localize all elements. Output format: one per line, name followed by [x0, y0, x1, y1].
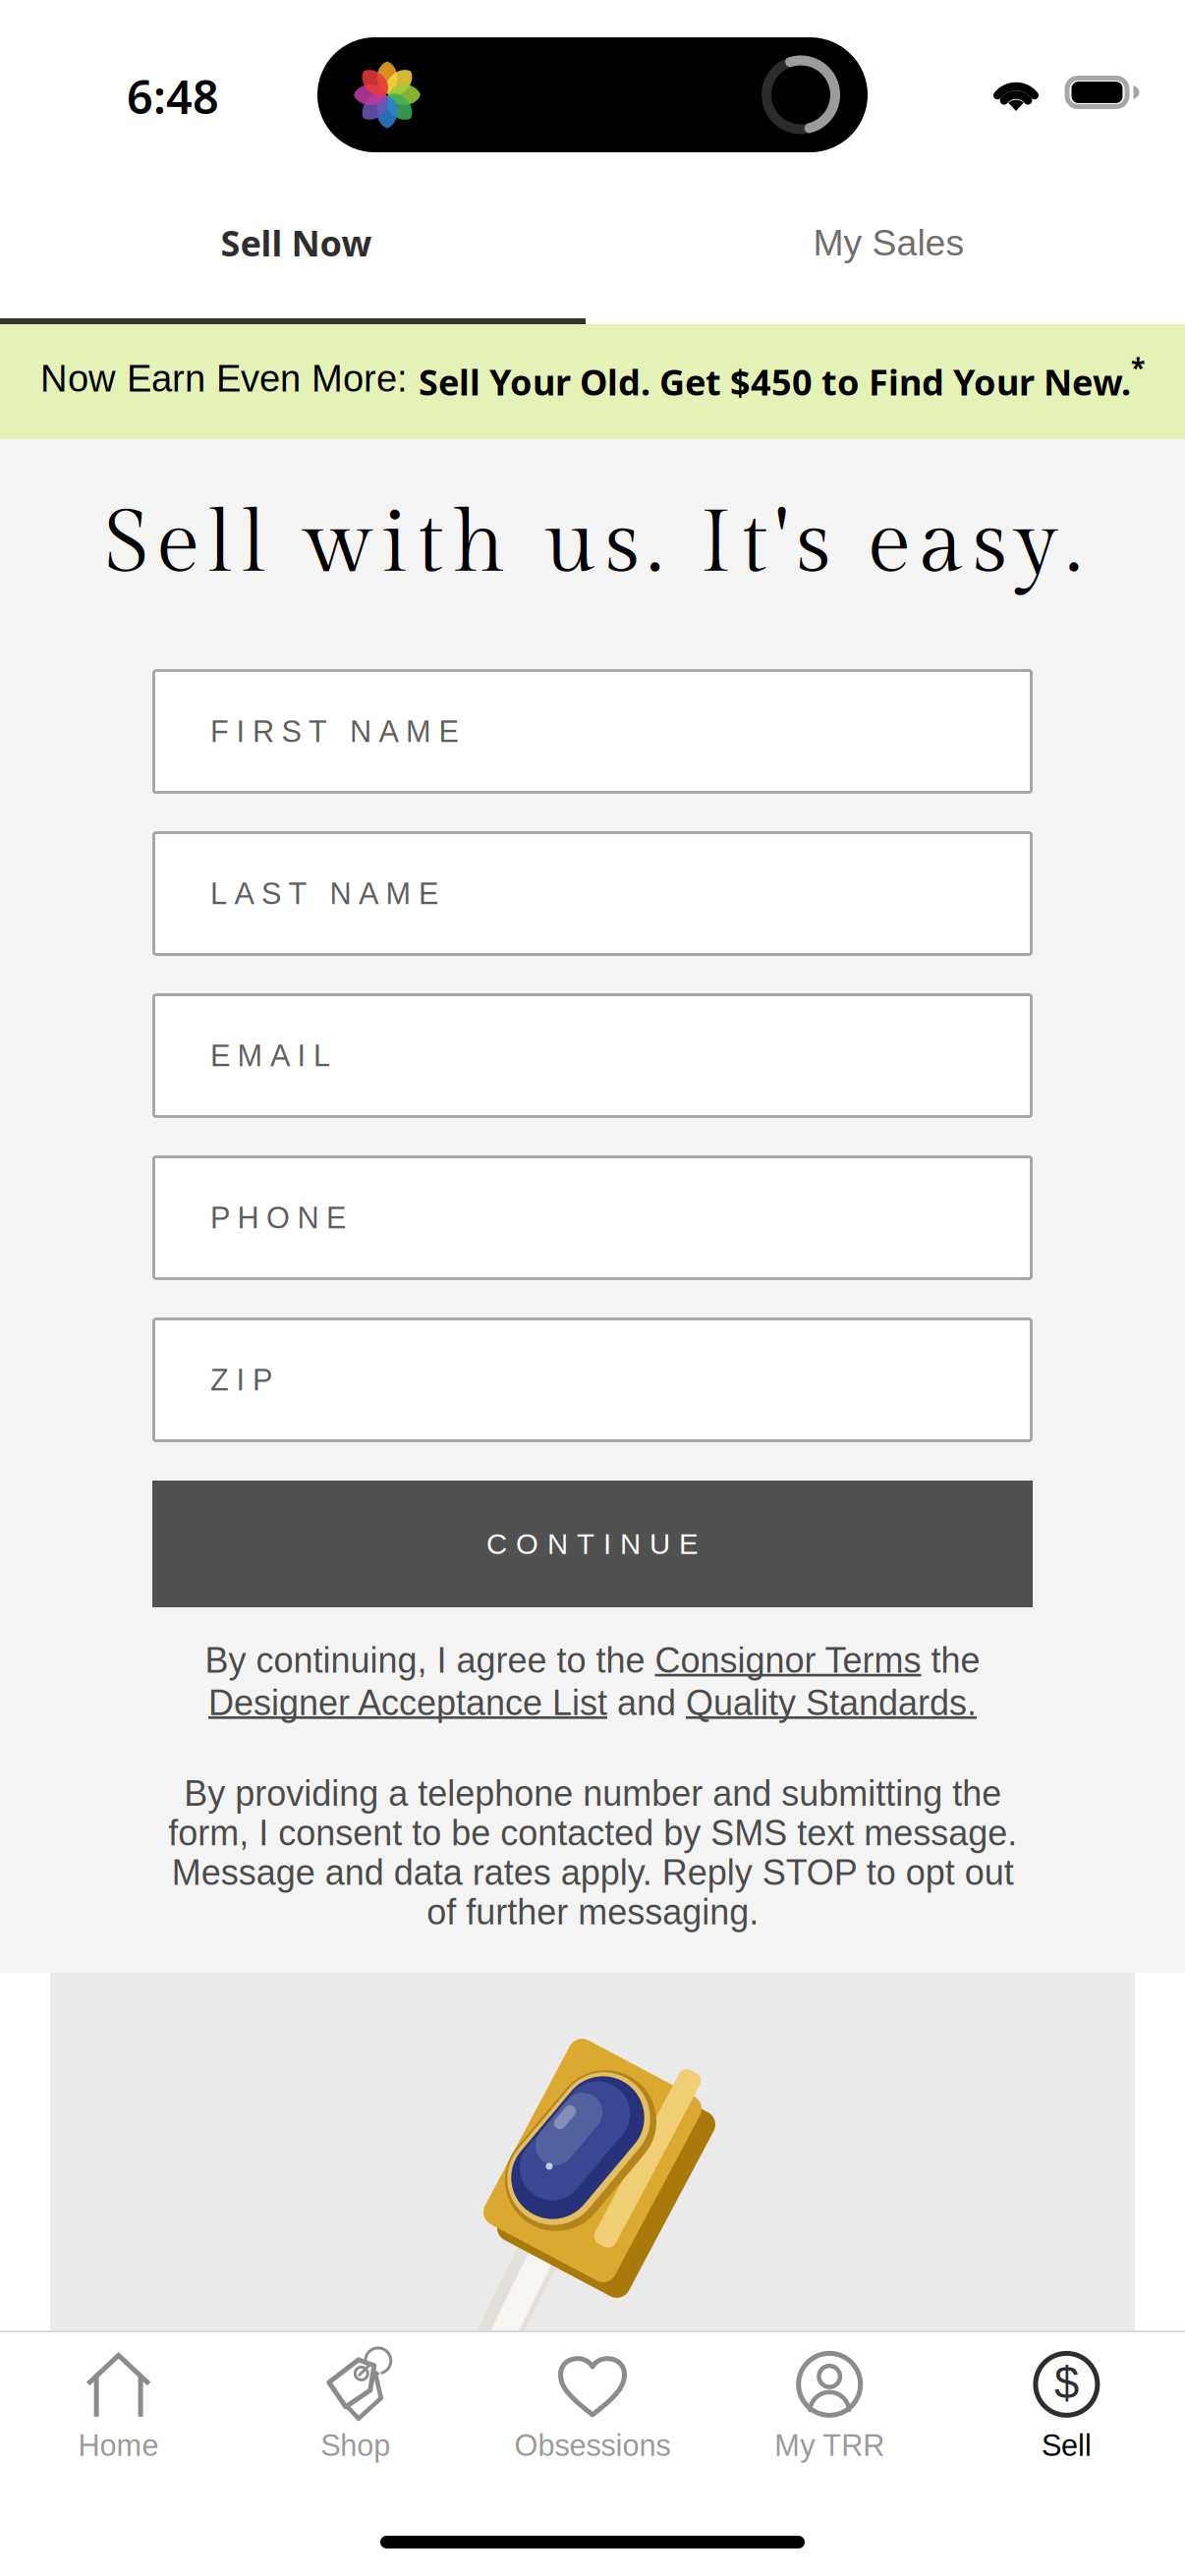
staticText: Designer Acceptance List [208, 1683, 607, 1723]
button[interactable]: My Sales [592, 167, 1185, 318]
button[interactable]: Quality Standards. [686, 1683, 977, 1723]
button[interactable]: Sell Now [0, 167, 592, 318]
staticText: LAST NAME [210, 877, 438, 910]
staticText: FIRST NAME [210, 715, 458, 748]
staticText: By providing a telephone number and subm… [168, 1774, 1017, 1932]
staticText: Shop [321, 2429, 390, 2462]
button[interactable]: ZIP [152, 1317, 1033, 1442]
button[interactable]: EMAIL [152, 993, 1033, 1118]
button[interactable]: Obsessions [474, 2340, 711, 2468]
staticText: My Sales [813, 222, 964, 263]
button[interactable]: Now Earn Even More: [0, 324, 1185, 439]
staticText: Consignor Terms [655, 1641, 921, 1680]
button[interactable]: Consignor Terms [655, 1641, 921, 1680]
button[interactable]: Shop [237, 2340, 474, 2468]
button[interactable]: Home [0, 2340, 237, 2468]
button[interactable]: $ [948, 2340, 1185, 2468]
button[interactable]: LAST NAME [152, 831, 1033, 956]
button[interactable]: CONTINUE [152, 1481, 1033, 1607]
staticText: $ [1054, 2358, 1079, 2408]
staticText: EMAIL [210, 1039, 330, 1073]
button[interactable]: FIRST NAME [152, 669, 1033, 794]
staticText: Sell with us. It's easy. [104, 493, 1081, 595]
staticText: and [607, 1683, 686, 1723]
staticText: My TRR [774, 2429, 885, 2462]
staticText: the [921, 1641, 980, 1680]
staticText: Sell Now [221, 219, 372, 267]
staticText: Obsessions [514, 2429, 671, 2462]
staticText: Home [78, 2429, 159, 2462]
button[interactable]: My TRR [711, 2340, 948, 2468]
staticText: Sell [1041, 2429, 1092, 2462]
staticText: Quality Standards. [686, 1683, 977, 1723]
staticText: CONTINUE [486, 1528, 699, 1560]
staticText: PHONE [210, 1201, 346, 1235]
staticText: 6:48 [127, 65, 219, 127]
button[interactable]: Designer Acceptance List [208, 1683, 607, 1723]
staticText: By continuing, I agree to the [205, 1641, 655, 1680]
staticText: Now Earn Even More: [40, 358, 419, 399]
staticText: Sell Your Old. Get $450 to Find Your New… [419, 358, 1131, 406]
staticText: ZIP [210, 1363, 272, 1397]
staticText: * [1131, 350, 1145, 385]
button[interactable]: PHONE [152, 1155, 1033, 1280]
